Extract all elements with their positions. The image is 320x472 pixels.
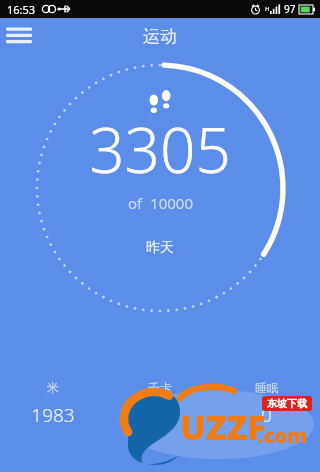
staticText: UZZF <box>180 404 266 450</box>
staticText: 0 <box>261 402 272 428</box>
button[interactable]: 米 <box>0 374 106 434</box>
staticText: 3305 <box>89 107 231 191</box>
button[interactable]: 睡眠 <box>213 374 320 434</box>
staticText: H <box>265 5 270 13</box>
button[interactable]: 千卡 <box>106 374 213 434</box>
staticText: of 10000 <box>128 193 193 213</box>
button[interactable]: Open navigation menu <box>0 19 38 53</box>
staticText: 昨天 <box>146 239 174 257</box>
staticText: 睡眠 <box>255 380 279 395</box>
staticText: 米 <box>47 380 59 395</box>
staticText: 东坡下载 <box>267 397 307 410</box>
staticText: 100 <box>143 402 176 428</box>
staticText: 16:53 <box>7 2 36 17</box>
staticText: .com <box>258 422 308 449</box>
staticText: 1983 <box>31 402 75 428</box>
staticText: 千卡 <box>148 380 172 395</box>
staticText: 97 <box>284 2 296 16</box>
staticText: 运动 <box>143 26 177 47</box>
